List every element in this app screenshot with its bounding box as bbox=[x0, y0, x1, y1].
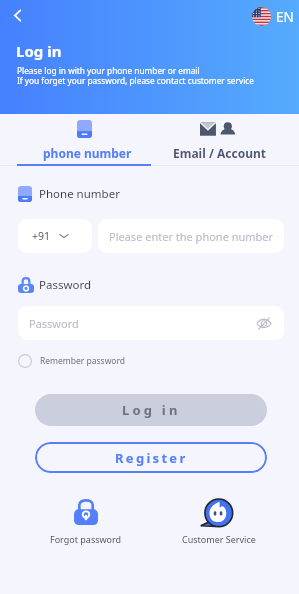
staticText: Log in bbox=[122, 401, 181, 419]
button[interactable]: Email / Account bbox=[170, 114, 299, 166]
button[interactable]: phone number bbox=[0, 114, 170, 166]
staticText: Log in bbox=[16, 41, 62, 61]
staticText: Email / Account bbox=[173, 145, 266, 161]
button[interactable]: Back bbox=[6, 4, 28, 26]
button[interactable]: Language: EN bbox=[252, 7, 294, 26]
button[interactable]: Customer Service bbox=[166, 498, 271, 545]
staticText: phone number bbox=[43, 145, 132, 161]
staticText: Password bbox=[39, 277, 92, 293]
staticText: EN bbox=[276, 8, 294, 26]
button[interactable]: Register bbox=[35, 442, 267, 473]
button[interactable]: +91 bbox=[18, 219, 92, 253]
staticText: Password bbox=[29, 316, 79, 331]
staticText: Please log in with your phone number or … bbox=[17, 65, 200, 76]
button[interactable]: Log in bbox=[35, 394, 267, 426]
staticText: Customer Service bbox=[182, 533, 256, 545]
button[interactable]: Remember password bbox=[18, 354, 126, 368]
staticText: Please enter the phone number bbox=[109, 229, 274, 244]
button[interactable]: Password bbox=[18, 306, 284, 340]
button[interactable]: Forgot password bbox=[33, 498, 138, 545]
staticText: If you forget your password, please cont… bbox=[17, 75, 254, 86]
staticText: Register bbox=[115, 449, 188, 467]
staticText: Remember password bbox=[40, 355, 126, 367]
button[interactable]: Please enter the phone number bbox=[98, 219, 284, 253]
staticText: +91 bbox=[32, 229, 51, 243]
staticText: Forgot password bbox=[50, 533, 122, 545]
staticText: Phone number bbox=[39, 186, 120, 202]
button[interactable]: Show password bbox=[254, 313, 274, 333]
